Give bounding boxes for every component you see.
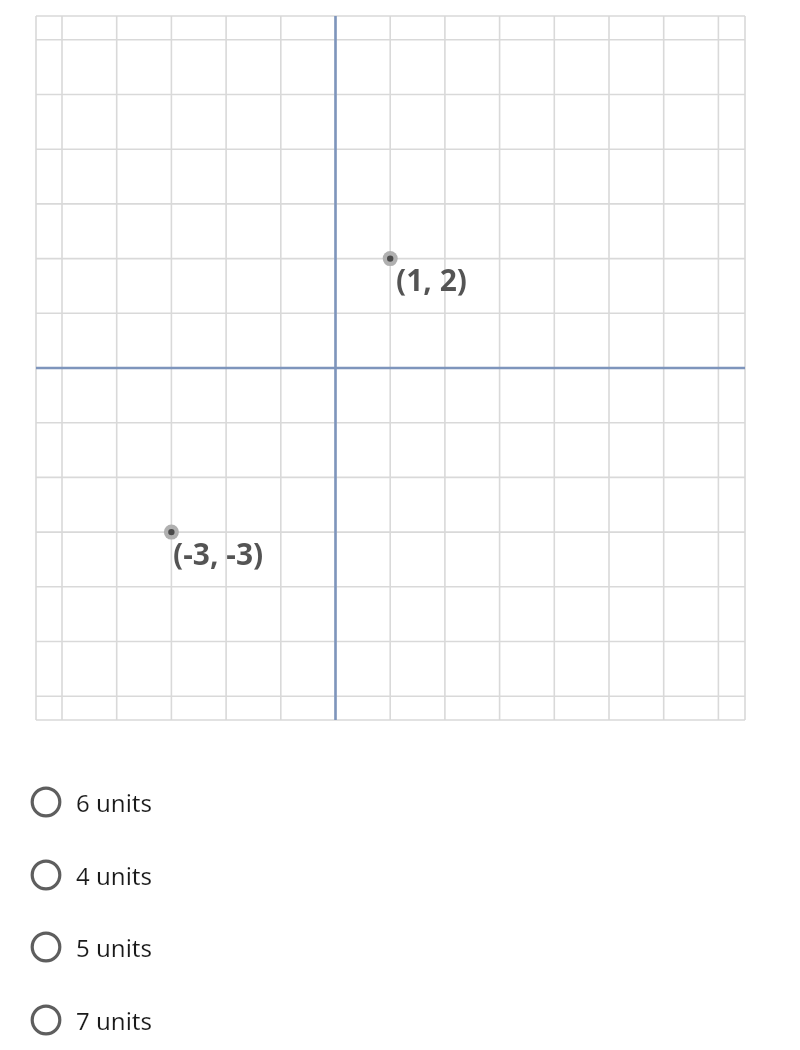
button[interactable]: 7 units bbox=[22, 994, 322, 1046]
button[interactable]: 5 units bbox=[22, 921, 322, 973]
staticText: 4 units bbox=[76, 859, 152, 892]
staticText: 5 units bbox=[76, 931, 152, 964]
staticText: 7 units bbox=[76, 1004, 152, 1037]
staticText: (1, 2) bbox=[396, 259, 468, 300]
staticText: (-3, -3) bbox=[173, 533, 264, 574]
staticText: 6 units bbox=[76, 786, 152, 819]
button[interactable]: 4 units bbox=[22, 849, 322, 901]
button[interactable]: 6 units bbox=[22, 776, 322, 828]
